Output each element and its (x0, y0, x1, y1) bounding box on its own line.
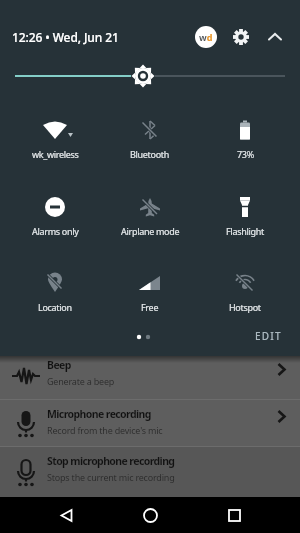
staticText: Record from the device's mic (47, 424, 163, 436)
staticText: Bluetooth (130, 148, 170, 160)
button[interactable] (136, 501, 164, 529)
button[interactable]: Hotspot (190, 269, 300, 325)
button[interactable]: Bluetooth (110, 116, 190, 172)
staticText: Microphone recording (47, 407, 151, 421)
staticText: Stop microphone recording (47, 454, 175, 468)
button[interactable] (229, 25, 253, 49)
staticText: wd (199, 31, 213, 43)
button[interactable] (263, 25, 287, 49)
staticText: Free (141, 301, 159, 313)
staticText: wk_wireless (32, 148, 79, 160)
staticText: Location (38, 301, 72, 313)
staticText: Stops the current mic recording (47, 471, 175, 483)
staticText: Generate a beep (47, 375, 115, 387)
button[interactable]: Beep (0, 352, 300, 399)
button[interactable]: wk_wireless (0, 116, 110, 172)
staticText: Hotspot (229, 301, 261, 313)
button[interactable] (52, 501, 80, 529)
button[interactable]: Free (110, 269, 190, 325)
button[interactable]: Stop microphone recording (0, 447, 300, 497)
button[interactable]: Microphone recording (0, 400, 300, 446)
button[interactable]: EDIT (255, 329, 282, 343)
staticText: 73% (237, 148, 254, 160)
button[interactable]: wd (195, 26, 217, 48)
button[interactable] (220, 501, 248, 529)
button[interactable]: Airplane mode (110, 193, 190, 249)
button[interactable] (0, 56, 300, 96)
staticText: 12:26 • Wed, Jun 21 (12, 29, 119, 45)
button[interactable]: Flashlight (190, 193, 300, 249)
button[interactable]: Location (0, 269, 110, 325)
button[interactable]: Alarms only (0, 193, 110, 249)
staticText: Flashlight (226, 225, 264, 237)
button[interactable]: 73% (190, 116, 300, 172)
staticText: Airplane mode (121, 225, 180, 237)
staticText: EDIT (255, 329, 282, 343)
staticText: Beep (47, 358, 71, 372)
staticText: Alarms only (32, 225, 79, 237)
